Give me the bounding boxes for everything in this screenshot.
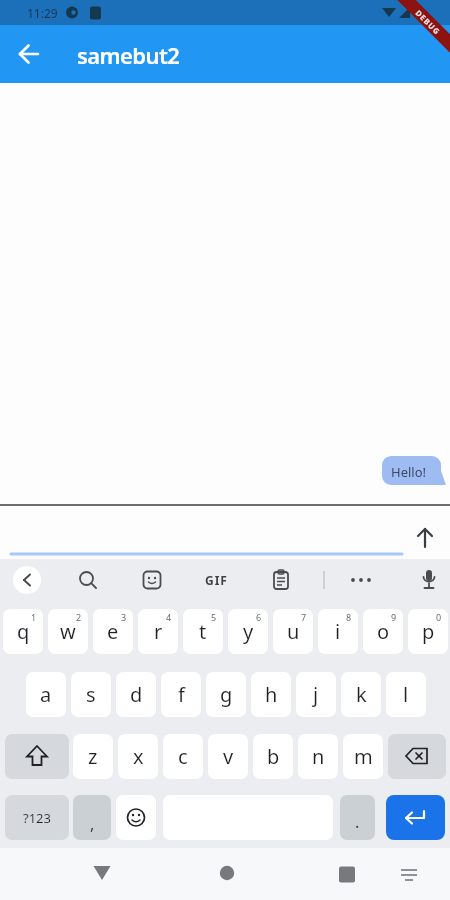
- staticText: w: [60, 618, 76, 645]
- button[interactable]: c: [163, 734, 203, 779]
- button[interactable]: .: [340, 795, 375, 840]
- staticText: r: [154, 618, 163, 645]
- staticText: 4: [166, 611, 172, 623]
- button[interactable]: [388, 734, 446, 779]
- staticText: f: [178, 681, 185, 708]
- staticText: 1: [31, 611, 37, 623]
- staticText: y: [243, 618, 254, 645]
- button[interactable]: [405, 512, 445, 552]
- button[interactable]: j: [296, 672, 336, 717]
- staticText: t: [199, 618, 207, 645]
- staticText: l: [403, 681, 409, 708]
- button[interactable]: r: [138, 609, 178, 654]
- staticText: x: [133, 743, 144, 770]
- button[interactable]: k: [341, 672, 381, 717]
- staticText: 8: [346, 611, 352, 623]
- button[interactable]: u: [273, 609, 313, 654]
- staticText: Hello!: [391, 463, 427, 481]
- staticText: 3: [121, 611, 127, 623]
- button[interactable]: g: [206, 672, 246, 717]
- staticText: e: [107, 618, 119, 645]
- staticText: .: [355, 811, 360, 833]
- staticText: GIF: [205, 572, 228, 588]
- staticText: 0: [436, 611, 442, 623]
- button[interactable]: [13, 566, 41, 594]
- staticText: h: [265, 681, 278, 708]
- staticText: n: [312, 743, 325, 770]
- staticText: 6: [256, 611, 262, 623]
- staticText: c: [178, 743, 188, 770]
- staticText: 7: [301, 611, 307, 623]
- button[interactable]: n: [298, 734, 338, 779]
- staticText: samebut2: [77, 40, 180, 70]
- staticText: m: [354, 743, 373, 770]
- button[interactable]: z: [73, 734, 113, 779]
- button[interactable]: f: [161, 672, 201, 717]
- staticText: 2: [76, 611, 82, 623]
- button[interactable]: e: [93, 609, 133, 654]
- staticText: o: [377, 618, 390, 645]
- button[interactable]: [5, 734, 69, 779]
- button[interactable]: i: [318, 609, 358, 654]
- button[interactable]: d: [116, 672, 156, 717]
- button[interactable]: y: [228, 609, 268, 654]
- button[interactable]: [81, 848, 123, 890]
- button[interactable]: t: [183, 609, 223, 654]
- staticText: d: [130, 681, 143, 708]
- button[interactable]: w: [48, 609, 88, 654]
- button[interactable]: ?123: [5, 795, 69, 840]
- staticText: j: [313, 681, 319, 708]
- staticText: ?123: [23, 809, 51, 827]
- button[interactable]: v: [208, 734, 248, 779]
- button[interactable]: s: [71, 672, 111, 717]
- button[interactable]: q: [3, 609, 43, 654]
- button[interactable]: m: [343, 734, 383, 779]
- button[interactable]: [386, 795, 445, 840]
- staticText: DEBUG: [413, 8, 442, 37]
- staticText: 5: [211, 611, 217, 623]
- staticText: p: [422, 618, 435, 645]
- staticText: u: [287, 618, 300, 645]
- button[interactable]: [72, 564, 104, 596]
- staticText: q: [17, 618, 30, 645]
- button[interactable]: h: [251, 672, 291, 717]
- button[interactable]: x: [118, 734, 158, 779]
- button[interactable]: [413, 564, 445, 596]
- button[interactable]: ,: [73, 795, 111, 840]
- staticText: z: [88, 743, 98, 770]
- staticText: k: [356, 681, 367, 708]
- button[interactable]: b: [253, 734, 293, 779]
- button[interactable]: [116, 795, 156, 840]
- button[interactable]: l: [386, 672, 426, 717]
- button[interactable]: a: [26, 672, 66, 717]
- staticText: ,: [90, 813, 95, 835]
- button[interactable]: o: [363, 609, 403, 654]
- staticText: s: [86, 681, 96, 708]
- button[interactable]: [9, 34, 49, 74]
- button[interactable]: p: [408, 609, 448, 654]
- button[interactable]: [206, 848, 248, 890]
- button[interactable]: [136, 564, 168, 596]
- button[interactable]: [326, 848, 368, 890]
- staticText: v: [223, 743, 234, 770]
- button[interactable]: GIF: [198, 564, 234, 596]
- button[interactable]: [393, 856, 425, 892]
- staticText: 9: [391, 611, 397, 623]
- button[interactable]: [265, 564, 297, 596]
- staticText: 11:29: [27, 5, 58, 21]
- staticText: g: [220, 681, 233, 708]
- staticText: a: [40, 681, 52, 708]
- staticText: i: [335, 618, 341, 645]
- staticText: b: [267, 743, 280, 770]
